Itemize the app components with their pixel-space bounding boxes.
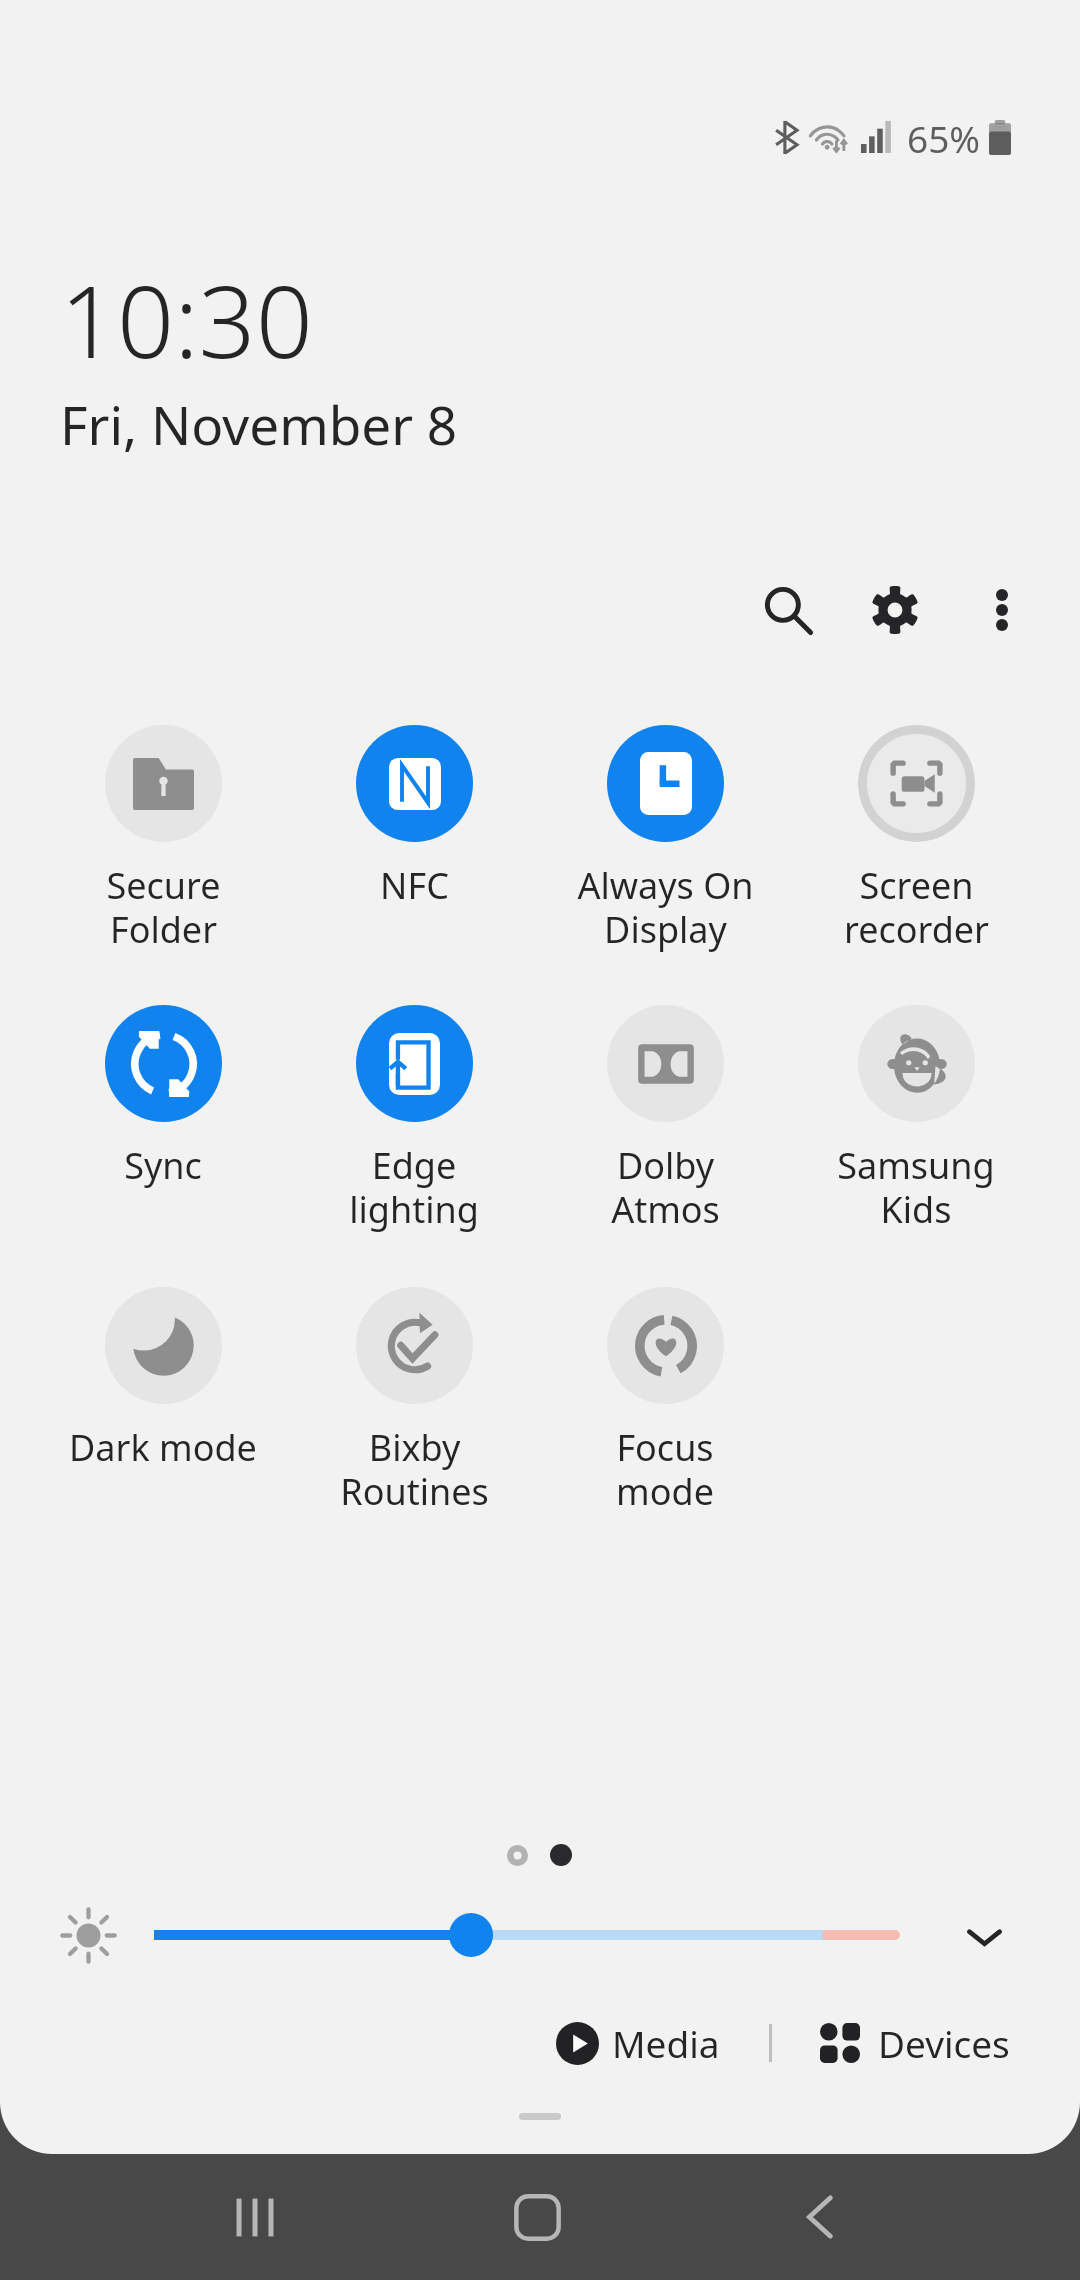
staticText: Always On Display [577,861,754,953]
button[interactable]: Media [548,2009,728,2077]
staticText: Dolby Atmos [611,1141,720,1233]
staticText: Edge lighting [349,1141,479,1233]
button[interactable]: Edge lighting [299,1005,529,1233]
staticText: Devices [878,2018,1010,2068]
button[interactable]: Brightness [154,1911,900,1959]
button[interactable]: NFC [299,725,529,910]
button[interactable]: Expand [944,1897,1024,1977]
button[interactable]: Dolby Atmos [550,1005,780,1233]
staticText: Sync [124,1141,202,1190]
button[interactable]: Devices [812,2009,1018,2077]
button[interactable]: Always On Display [550,725,780,953]
staticText: Secure Folder [106,861,221,953]
staticText: Media [612,2018,720,2068]
button[interactable]: Samsung Kids [801,1005,1031,1233]
staticText: 65% [907,113,981,163]
staticText: Screen recorder [844,861,989,953]
button[interactable]: Page 2 [550,1844,572,1866]
button[interactable]: More options [962,570,1042,650]
staticText: Dark mode [69,1423,257,1472]
staticText: NFC [380,861,449,910]
staticText: Bixby Routines [340,1423,489,1515]
button[interactable]: Focus mode [550,1287,780,1515]
staticText: Samsung Kids [837,1141,995,1233]
button[interactable]: Sync [48,1005,278,1190]
staticText: 10:30 [60,251,313,387]
staticText: Focus mode [616,1423,714,1515]
button[interactable]: Bixby Routines [299,1287,529,1515]
button[interactable]: Secure Folder [48,725,278,953]
button[interactable]: Search [748,570,828,650]
button[interactable]: Dark mode [48,1287,278,1472]
button[interactable]: Screen recorder [801,725,1031,953]
button[interactable]: Settings [855,570,935,650]
button[interactable]: Page 1 [507,1845,528,1866]
button[interactable]: Recents [215,2177,295,2257]
button[interactable]: Back [779,2177,859,2257]
staticText: Fri, November 8 [60,388,458,460]
button[interactable]: Home [497,2177,577,2257]
